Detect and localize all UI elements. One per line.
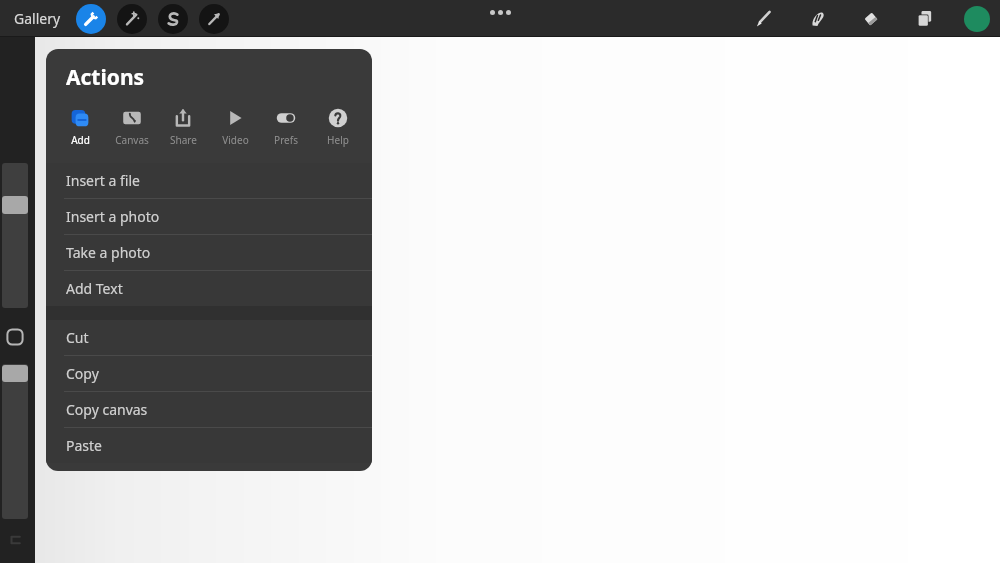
button[interactable]: Undo xyxy=(0,525,30,555)
button[interactable]: Layers xyxy=(910,4,940,34)
button[interactable]: Selection xyxy=(158,4,188,34)
button[interactable]: Smudge xyxy=(802,4,832,34)
button[interactable]: Canvas xyxy=(110,104,154,149)
button[interactable]: Add xyxy=(58,104,102,149)
staticText: Paste xyxy=(66,436,102,455)
button[interactable]: Copy xyxy=(46,356,372,391)
button[interactable]: Transform xyxy=(199,4,229,34)
staticText: Actions xyxy=(66,63,145,92)
button[interactable]: Paste xyxy=(46,428,372,463)
staticText: Take a photo xyxy=(66,243,151,262)
staticText: Insert a file xyxy=(66,171,140,190)
button[interactable]: Share xyxy=(161,104,205,149)
button[interactable]: Copy canvas xyxy=(46,392,372,427)
staticText: Prefs xyxy=(274,133,298,147)
button[interactable]: Cut xyxy=(46,320,372,355)
staticText: Share xyxy=(170,133,197,147)
staticText: Copy canvas xyxy=(66,400,148,419)
button[interactable]: Actions xyxy=(76,4,106,34)
button[interactable]: Color xyxy=(964,6,990,32)
staticText: Add Text xyxy=(66,279,123,298)
button[interactable]: More options xyxy=(486,7,515,18)
button[interactable]: Take a photo xyxy=(46,235,372,270)
staticText: Help xyxy=(327,133,349,147)
staticText: Add xyxy=(71,133,90,147)
button[interactable]: Help xyxy=(316,104,360,149)
button[interactable]: Erase xyxy=(856,4,886,34)
staticText: Video xyxy=(222,133,249,147)
staticText: Insert a photo xyxy=(66,207,160,226)
button[interactable]: Opacity xyxy=(2,364,28,519)
button[interactable]: Paint xyxy=(748,4,778,34)
staticText: Gallery xyxy=(14,9,61,28)
button[interactable]: Insert a photo xyxy=(46,199,372,234)
button[interactable]: Gallery xyxy=(8,5,67,32)
button[interactable]: Add Text xyxy=(46,271,372,306)
button[interactable]: Adjustments xyxy=(117,4,147,34)
button[interactable]: Video xyxy=(213,104,257,149)
staticText: Cut xyxy=(66,328,89,347)
staticText: Copy xyxy=(66,364,99,383)
staticText: Canvas xyxy=(115,133,149,147)
button[interactable]: Brush size xyxy=(2,163,28,308)
button[interactable]: Modify xyxy=(4,326,26,348)
button[interactable]: Insert a file xyxy=(46,163,372,198)
button[interactable]: Prefs xyxy=(264,104,308,149)
